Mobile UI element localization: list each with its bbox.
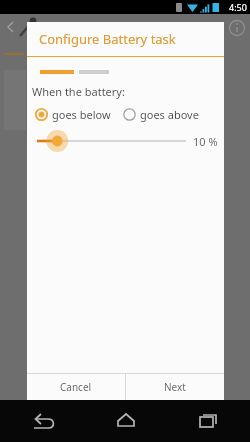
button[interactable]: goes below (33, 105, 113, 124)
button[interactable]: goes above (121, 105, 201, 124)
button[interactable]: Next (126, 374, 224, 400)
staticText: When the battery: (32, 84, 125, 99)
button[interactable]: Back (0, 400, 84, 442)
button[interactable]: Cancel (27, 374, 125, 400)
staticText: Configure Battery task (39, 30, 176, 48)
staticText: 10 % (193, 134, 218, 149)
button[interactable]: Recent apps (167, 400, 250, 442)
staticText: goes above (140, 107, 199, 122)
staticText: Next (164, 380, 186, 394)
button[interactable]: Home (84, 400, 167, 442)
button[interactable]: Battery level slider (37, 128, 188, 154)
staticText: 4:50 (229, 1, 247, 13)
staticText: goes below (52, 107, 111, 122)
staticText: Cancel (60, 380, 92, 394)
